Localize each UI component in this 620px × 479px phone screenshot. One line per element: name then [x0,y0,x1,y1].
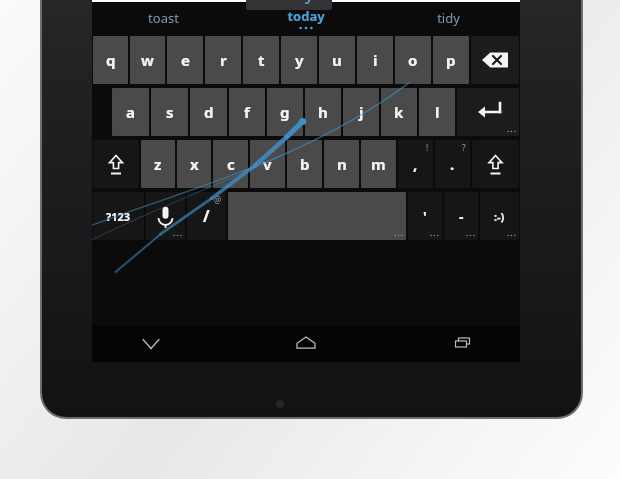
staticText: t [258,50,265,70]
staticText: m [371,154,386,174]
staticText: s [166,102,174,122]
button[interactable]: Backspace [471,36,519,84]
button[interactable]: f [229,88,265,136]
staticText: a [126,102,135,122]
button[interactable]: k [381,88,417,136]
staticText: i [373,50,378,70]
staticText: ' [423,207,427,226]
staticText: v [263,154,272,174]
staticText: tidy [437,9,460,27]
button[interactable]: x [177,140,211,188]
staticText: u [332,50,342,70]
staticText: - [459,207,464,226]
staticText: ?123 [106,209,131,224]
button[interactable]: u [319,36,355,84]
button[interactable]: , [398,140,433,188]
staticText: r [220,50,227,70]
button[interactable]: q [93,36,128,84]
button[interactable]: c [213,140,248,188]
button[interactable]: m [361,140,396,188]
staticText: p [446,50,456,70]
staticText: k [394,102,404,122]
button[interactable]: n [324,140,359,188]
button[interactable]: Hide keyboard [128,327,174,361]
button[interactable]: r [205,36,241,84]
staticText: d [204,102,214,122]
staticText: g [280,102,290,122]
button[interactable]: toast [92,2,234,34]
staticText: j [359,102,364,122]
staticText: e [181,50,190,70]
button[interactable]: g [267,88,303,136]
button[interactable]: Home [283,327,329,361]
staticText: @ [214,194,222,205]
button[interactable]: ?123 [93,192,144,240]
button[interactable]: z [141,140,175,188]
button[interactable]: a [112,88,149,136]
staticText: x [190,154,199,174]
staticText: w [141,50,154,70]
button[interactable]: Shift [93,140,139,188]
button[interactable]: Recent apps [438,327,484,361]
button[interactable]: - [444,192,478,240]
staticText: q [106,50,116,70]
staticText: o [408,50,418,70]
button[interactable]: ' [408,192,442,240]
button[interactable]: i [357,36,393,84]
button[interactable]: h [305,88,341,136]
button[interactable]: s [151,88,188,136]
staticText: f [244,102,250,122]
button[interactable]: Enter [457,88,519,136]
button[interactable]: p [433,36,469,84]
button[interactable]: l [419,88,455,136]
staticText: today [287,7,325,25]
staticText: h [318,102,328,122]
staticText: ? [462,142,466,153]
button[interactable]: / [187,192,226,240]
button[interactable]: Voice input [146,192,185,240]
button[interactable]: w [130,36,165,84]
staticText: . [450,154,455,174]
button[interactable]: :-) [480,192,519,240]
staticText: b [300,154,310,174]
staticText: y [295,50,304,70]
staticText: c [227,154,235,174]
button[interactable]: b [287,140,322,188]
button[interactable]: Shift [472,140,519,188]
button[interactable]: y [281,36,317,84]
button[interactable]: o [395,36,431,84]
staticText: toast [148,9,179,27]
staticText: ! [426,142,429,153]
button[interactable]: t [243,36,279,84]
button[interactable]: tidy [377,2,520,34]
button[interactable]: v [250,140,285,188]
staticText: z [154,154,162,174]
staticText: / [203,205,210,227]
staticText: l [435,102,440,122]
button[interactable]: today [246,0,332,10]
staticText: n [337,154,347,174]
staticText: , [413,154,418,174]
button[interactable]: d [190,88,227,136]
staticText: today [264,0,315,5]
button[interactable]: . [435,140,470,188]
staticText: :-) [494,209,505,224]
button[interactable]: e [167,36,203,84]
button[interactable]: j [343,88,379,136]
button[interactable]: today [234,2,377,34]
